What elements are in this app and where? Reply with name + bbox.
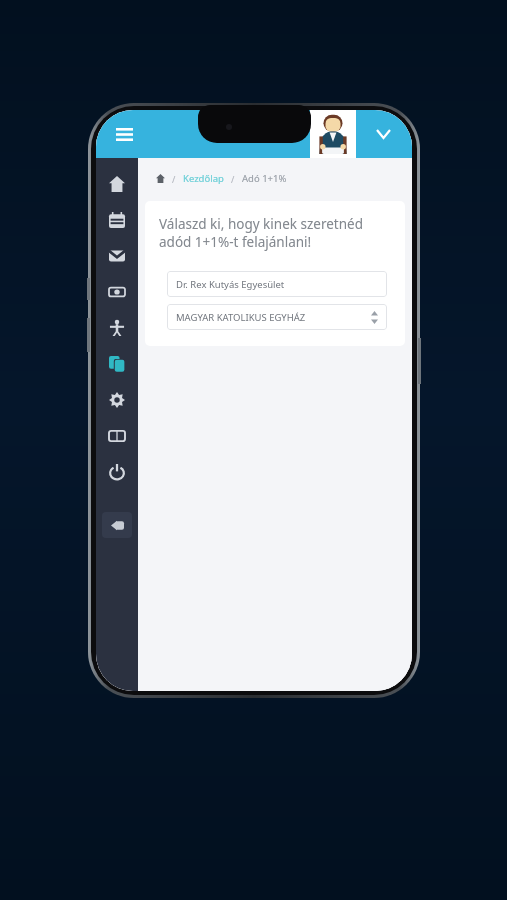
button[interactable]: MAGYAR KATOLIKUS EGYHÁZ [167,304,387,330]
button[interactable]: Settings [96,382,138,418]
button[interactable]: Messages [96,238,138,274]
staticText: / [172,173,176,185]
button[interactable]: Accessibility [96,310,138,346]
staticText: / [231,173,235,185]
button[interactable]: Payments [96,274,138,310]
button[interactable]: Documents [96,346,138,382]
staticText: Dr. Rex Kutyás Egyesület [176,278,285,291]
button[interactable]: Profile [310,110,356,158]
button[interactable]: Home [96,166,138,202]
button[interactable]: Calendar [96,202,138,238]
staticText: Kezdőlap [183,172,224,185]
button[interactable]: Kezdőlap [183,172,224,185]
staticText: MAGYAR KATOLIKUS EGYHÁZ [176,311,306,324]
button[interactable]: Power [96,454,138,490]
button[interactable]: Account menu [366,117,400,151]
staticText: Adó 1+1% [242,172,287,185]
button[interactable]: Dr. Rex Kutyás Egyesület [167,271,387,297]
button[interactable]: Collapse menu [102,512,132,538]
staticText: Válaszd ki, hogy kinek szeretnéd adód 1+… [159,215,363,251]
button[interactable]: Library [96,418,138,454]
button[interactable]: Menu [106,116,142,152]
